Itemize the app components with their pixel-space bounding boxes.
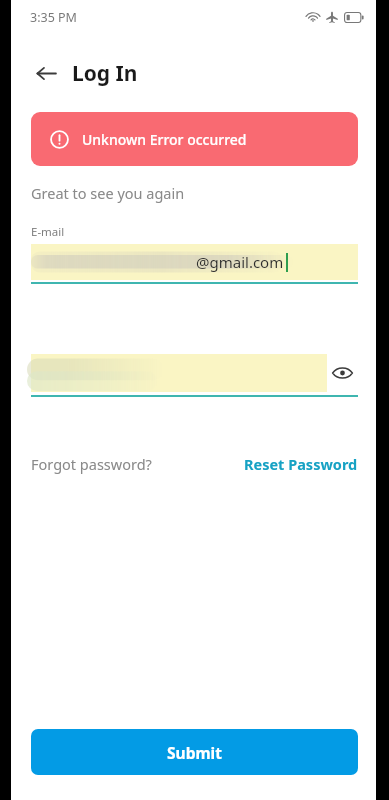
button[interactable]: Unknown Error occurred — [31, 112, 358, 166]
button[interactable]: E-mail — [31, 224, 358, 284]
staticText: @gmail.com — [196, 252, 284, 272]
button[interactable]: Reset Password — [244, 454, 358, 474]
button[interactable]: Forgot password? — [31, 454, 152, 474]
staticText: Great to see you again — [31, 183, 185, 203]
button[interactable]: Back — [31, 58, 61, 88]
staticText: 3:35 PM — [30, 9, 77, 26]
staticText: Submit — [167, 742, 222, 763]
staticText: Reset Password — [244, 454, 358, 474]
staticText: Unknown Error occurred — [82, 130, 247, 149]
staticText: Log In — [72, 59, 138, 88]
button[interactable] — [31, 354, 327, 392]
button[interactable]: Submit — [31, 729, 358, 775]
staticText: Forgot password? — [31, 454, 152, 474]
staticText: E-mail — [31, 224, 65, 240]
button[interactable]: Show password — [326, 357, 358, 389]
